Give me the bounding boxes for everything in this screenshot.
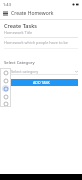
staticText: 1:43 xyxy=(3,2,11,7)
button[interactable]: Help xyxy=(2,93,9,100)
button[interactable]: Photo xyxy=(2,77,9,84)
button[interactable]: Homework xyxy=(2,69,9,76)
staticText: ADD TASK xyxy=(33,80,50,85)
button[interactable]: Selected xyxy=(2,85,9,92)
button[interactable]: Select category xyxy=(4,67,78,75)
button[interactable]: Menu xyxy=(0,8,11,19)
staticText: Homework Title xyxy=(4,30,33,35)
staticText: Create Tasks xyxy=(4,22,37,29)
button[interactable]: ADD TASK xyxy=(4,79,78,86)
staticText: Select category xyxy=(11,69,39,74)
staticText: Select Category xyxy=(4,60,35,66)
button[interactable]: Other xyxy=(2,101,9,107)
staticText: Create Homework xyxy=(11,10,54,17)
staticText: Homework which people have to be through xyxy=(4,40,78,45)
